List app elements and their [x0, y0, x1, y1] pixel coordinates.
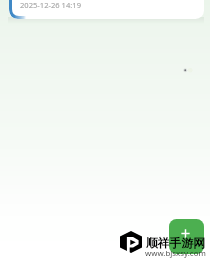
staticText: 顺祥手游网: [146, 236, 205, 251]
button[interactable]: Add: [169, 219, 204, 254]
button[interactable]: 2025-12-26 14:19: [9, 0, 204, 19]
staticText: 2025-12-26 14:19: [20, 0, 82, 10]
staticText: www.bjsxsy.com: [145, 248, 206, 259]
